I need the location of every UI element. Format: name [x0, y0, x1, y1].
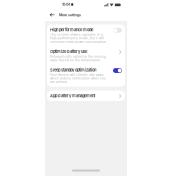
button[interactable]: App battery management	[47, 91, 125, 101]
button[interactable]: Sleep standby optimization	[47, 65, 125, 87]
staticText: Automatically optimize the running apps …	[50, 55, 106, 62]
staticText: Optimize battery use	[50, 49, 87, 54]
button[interactable]: Back	[48, 9, 59, 21]
button[interactable]: High performance mode	[47, 24, 125, 46]
staticText: 10:04	[62, 2, 70, 7]
staticText: More settings	[59, 13, 81, 17]
button[interactable]: Optimize battery use	[47, 46, 125, 65]
staticText: App battery management	[50, 93, 95, 98]
staticText: High performance mode	[50, 27, 93, 32]
staticText: The system always operates in a high-per…	[50, 33, 107, 43]
staticText: Your device will silently idle apps whic…	[50, 73, 106, 84]
staticText: Sleep standby optimization	[50, 67, 96, 72]
